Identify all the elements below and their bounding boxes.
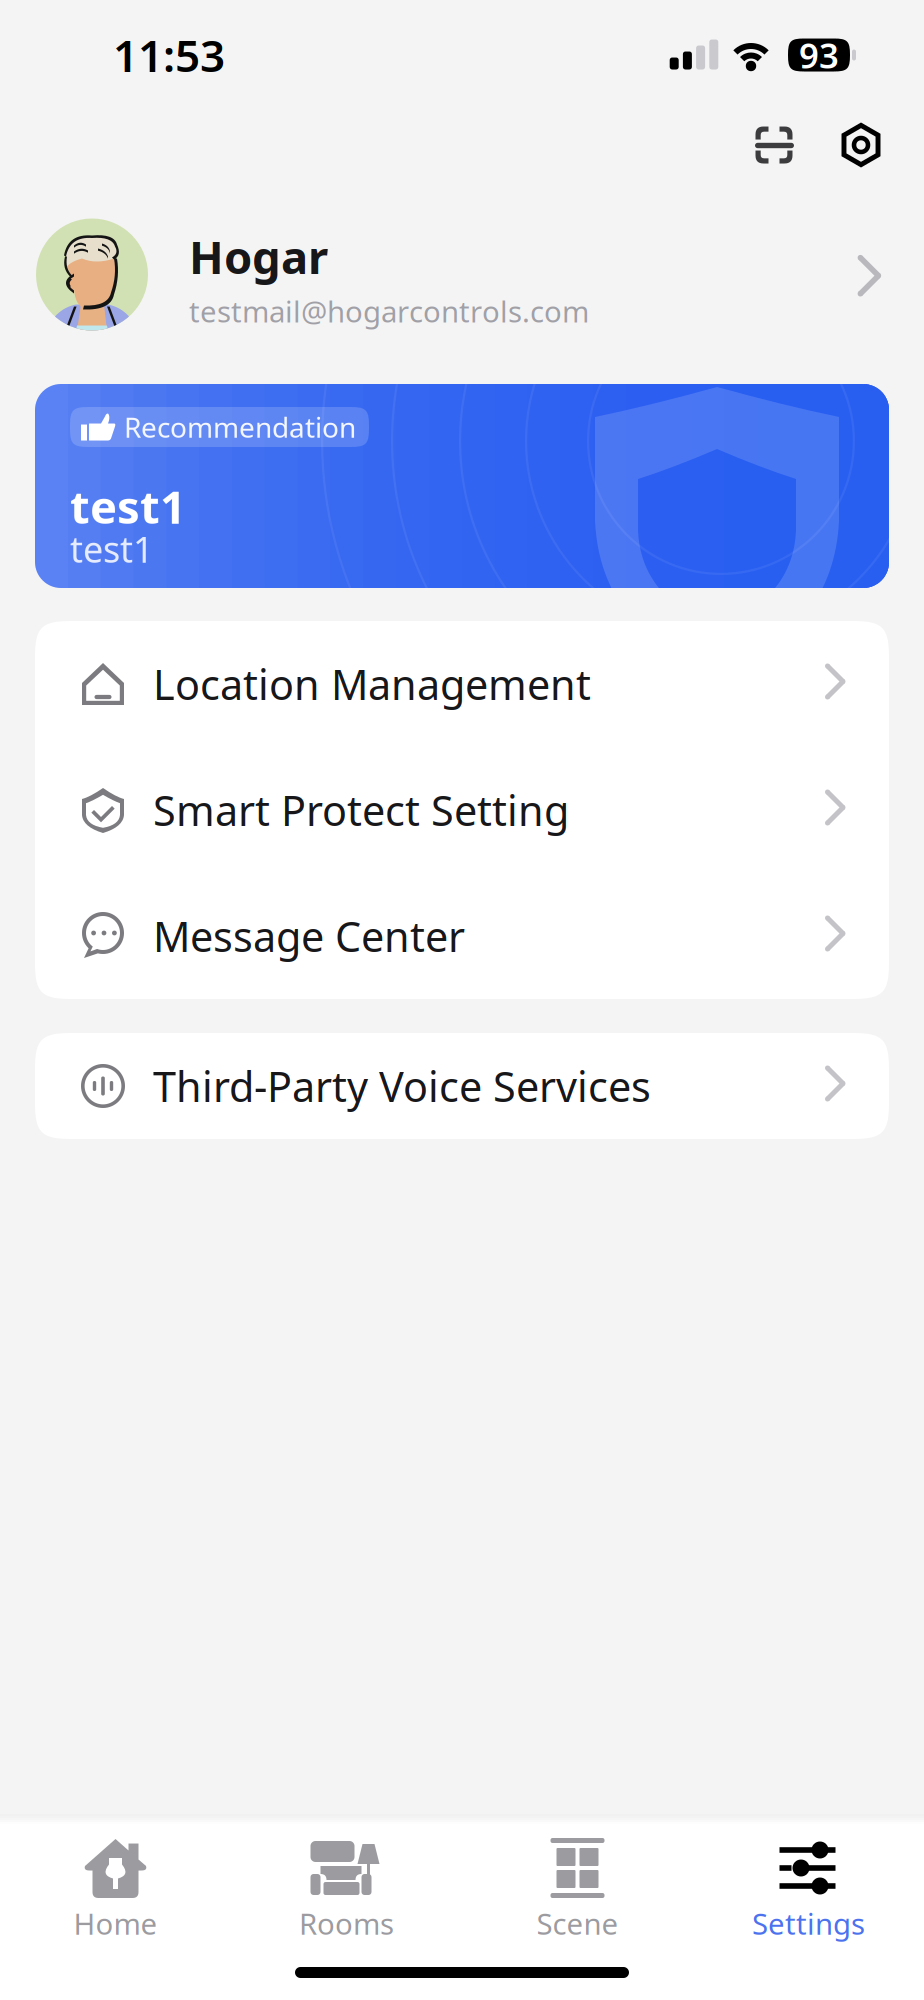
staticText: test1 bbox=[70, 525, 154, 573]
staticText: Recommendation bbox=[124, 408, 356, 446]
button[interactable]: Scene bbox=[462, 1824, 693, 1953]
button[interactable]: Message Center bbox=[35, 873, 889, 999]
button[interactable]: Hogar bbox=[0, 193, 924, 364]
button[interactable]: Settings bbox=[693, 1824, 924, 1953]
button[interactable]: Scan bbox=[755, 126, 794, 164]
staticText: Home bbox=[73, 1904, 157, 1943]
button[interactable]: Location Management bbox=[35, 621, 889, 747]
staticText: test1 bbox=[70, 476, 186, 536]
staticText: 93 bbox=[799, 32, 839, 78]
staticText: Hogar bbox=[189, 226, 328, 287]
staticText: Scene bbox=[536, 1904, 618, 1943]
button[interactable]: Smart Protect Setting bbox=[35, 747, 889, 873]
staticText: Location Management bbox=[153, 657, 591, 711]
staticText: Settings bbox=[752, 1904, 865, 1943]
staticText: Third-Party Voice Services bbox=[153, 1059, 651, 1113]
staticText: Smart Protect Setting bbox=[153, 783, 569, 837]
staticText: testmail@hogarcontrols.com bbox=[189, 292, 589, 331]
button[interactable]: Rooms bbox=[231, 1824, 462, 1953]
button[interactable]: Home bbox=[0, 1824, 231, 1953]
staticText: 11:53 bbox=[113, 26, 225, 84]
button[interactable]: Recommendation bbox=[35, 384, 889, 588]
button[interactable]: Settings bbox=[794, 122, 884, 168]
staticText: Rooms bbox=[299, 1904, 394, 1943]
staticText: Message Center bbox=[153, 909, 465, 963]
button[interactable]: Third-Party Voice Services bbox=[35, 1033, 889, 1139]
